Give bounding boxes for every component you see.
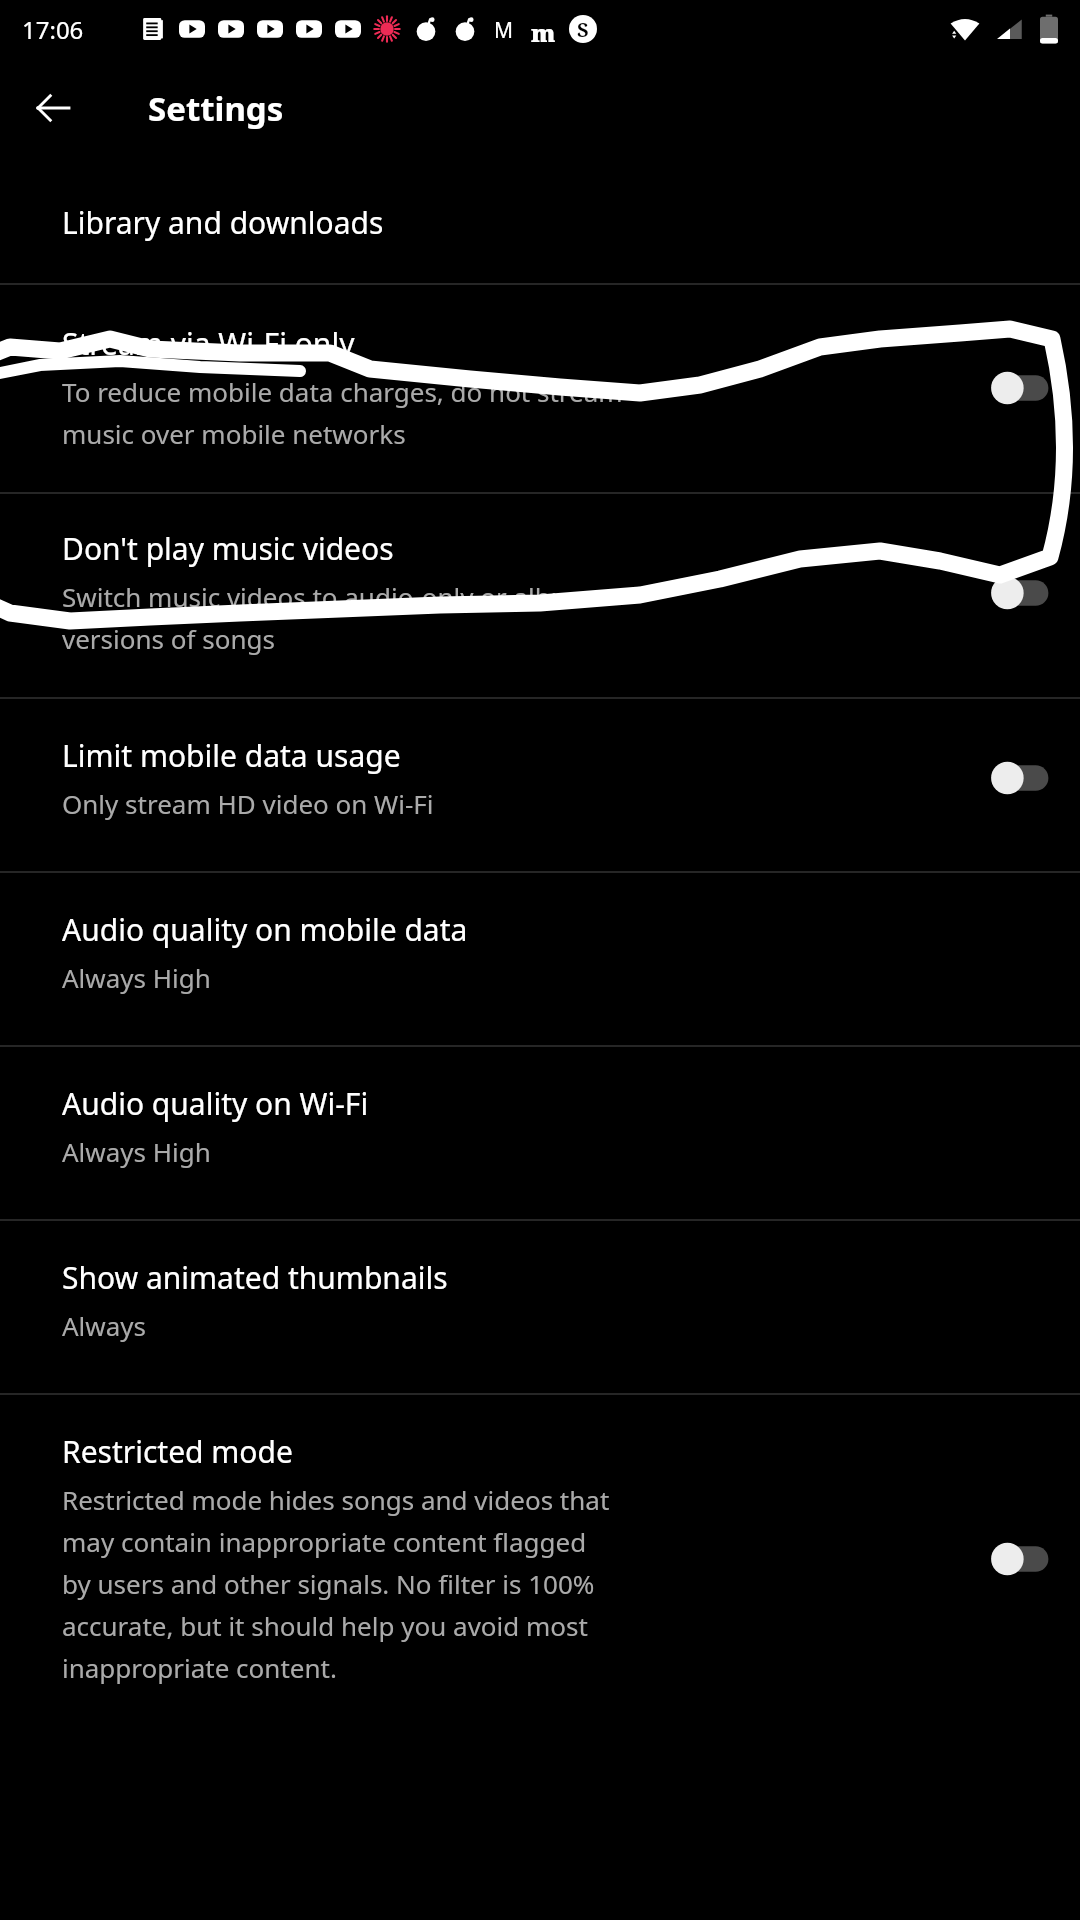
staticText: Switch music videos to audio-only or alb… [62, 579, 592, 657]
staticText: Only stream HD video on Wi-Fi [62, 786, 434, 821]
button[interactable]: Back [22, 77, 84, 139]
button[interactable]: Audio quality on Wi-Fi [0, 1047, 1080, 1219]
button[interactable]: Stream via Wi-Fi only [0, 285, 1080, 492]
button[interactable]: Toggle [984, 756, 1054, 800]
staticText: M [494, 16, 514, 42]
staticText: Always High [62, 1134, 211, 1169]
staticText: Restricted mode [62, 1431, 293, 1472]
button[interactable]: Toggle [984, 1537, 1054, 1581]
staticText: Always [62, 1308, 147, 1343]
button[interactable]: Audio quality on mobile data [0, 873, 1080, 1045]
staticText: Stream via Wi-Fi only [62, 323, 355, 364]
staticText: Restricted mode hides songs and videos t… [62, 1482, 610, 1686]
button[interactable]: Toggle [984, 571, 1054, 615]
button[interactable]: Limit mobile data usage [0, 699, 1080, 871]
button[interactable]: Show animated thumbnails [0, 1221, 1080, 1393]
button[interactable]: Restricted mode [0, 1395, 1080, 1722]
staticText: Limit mobile data usage [62, 735, 401, 776]
staticText: Settings [148, 86, 284, 131]
button[interactable]: Toggle [984, 366, 1054, 410]
staticText: To reduce mobile data charges, do not st… [62, 374, 623, 452]
staticText: Library and downloads [62, 202, 384, 243]
staticText: Don't play music videos [62, 528, 394, 569]
staticText: S [577, 16, 589, 43]
staticText: Audio quality on mobile data [62, 909, 468, 950]
button[interactable]: Don't play music videos [0, 494, 1080, 697]
staticText: Audio quality on Wi-Fi [62, 1083, 369, 1124]
staticText: m [531, 16, 556, 42]
staticText: Always High [62, 960, 211, 995]
staticText: 17:06 [22, 13, 84, 46]
staticText: Show animated thumbnails [62, 1257, 448, 1298]
